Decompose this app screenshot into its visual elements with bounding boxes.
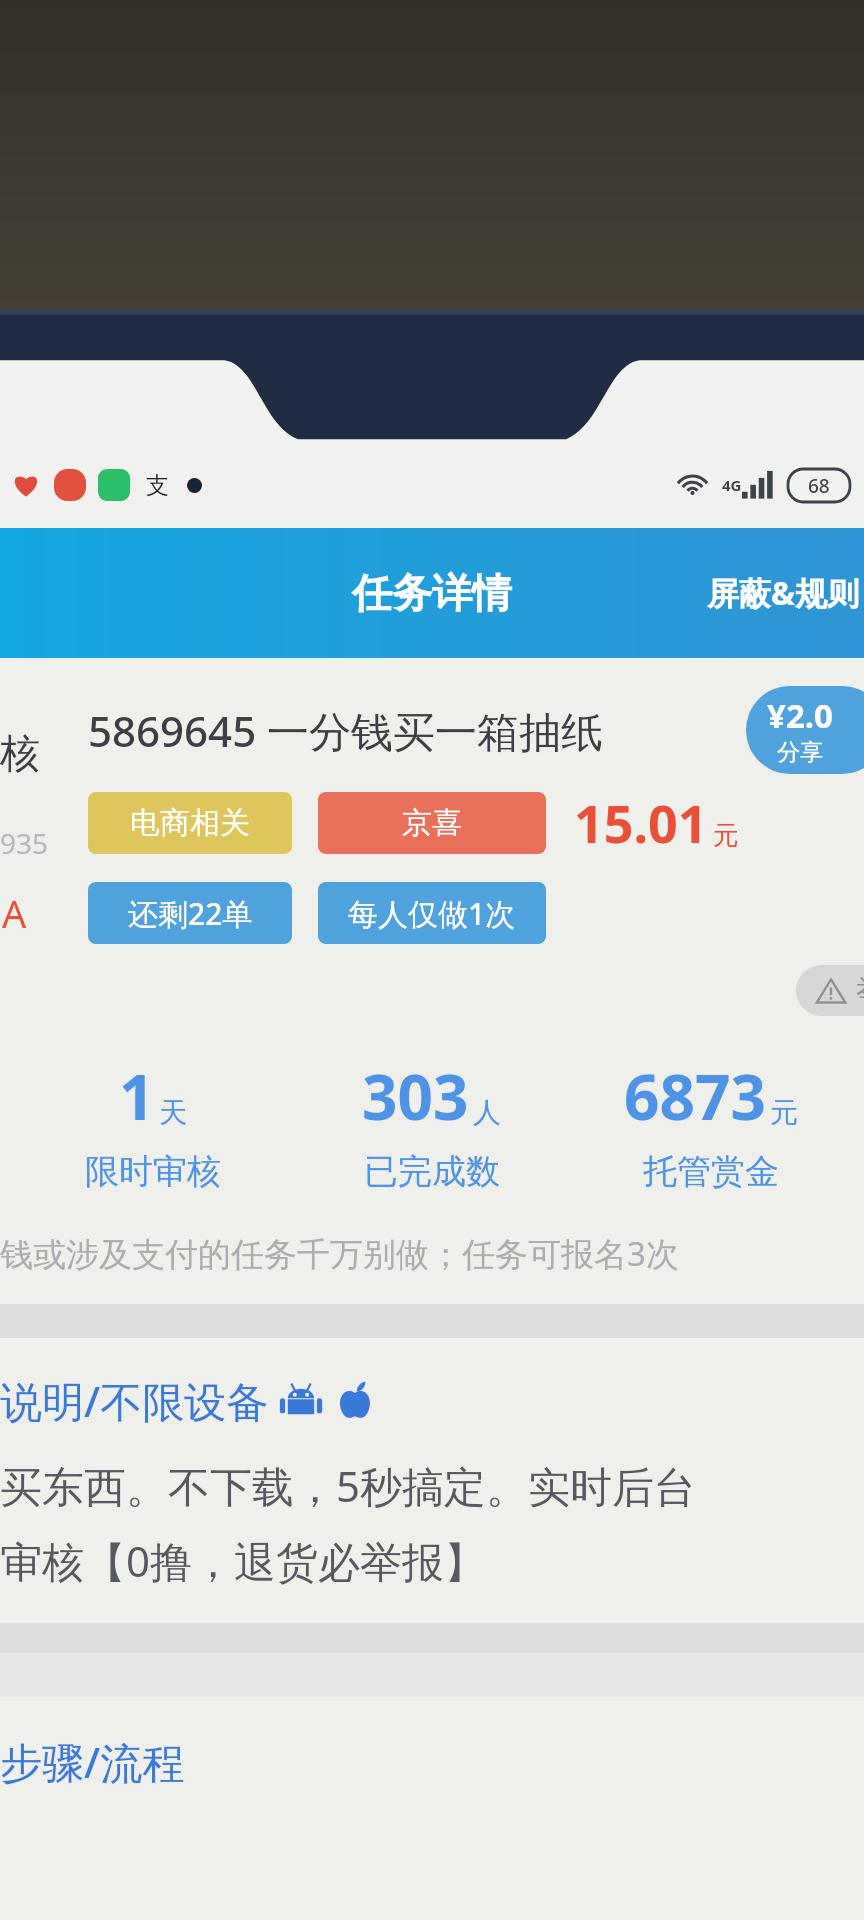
- staticText: 15.01: [574, 787, 708, 858]
- staticText: 68: [808, 473, 830, 499]
- staticText: 买东西。不下载，5秒搞定。实时后台: [0, 1457, 697, 1514]
- staticText: 京喜: [402, 804, 462, 842]
- staticText: 说明/不限设备: [0, 1372, 269, 1429]
- button[interactable]: 电商相关: [88, 792, 292, 854]
- staticText: 屏蔽&规则: [707, 571, 860, 615]
- staticText: 举: [856, 973, 864, 1008]
- button[interactable]: 5869645 一分钱买一箱抽纸: [88, 702, 604, 759]
- staticText: 分享: [777, 738, 823, 767]
- button[interactable]: 每人仅做1次: [318, 882, 546, 944]
- staticText: ¥2.0: [767, 693, 833, 738]
- button[interactable]: 京喜: [318, 792, 546, 854]
- staticText: 6873: [624, 1054, 766, 1138]
- staticText: 托管赏金: [643, 1150, 779, 1193]
- button[interactable]: 步骤/流程: [0, 1733, 185, 1790]
- button[interactable]: 屏蔽&规则: [703, 561, 864, 625]
- staticText: 每人仅做1次: [348, 893, 516, 934]
- staticText: 元: [770, 1095, 798, 1130]
- staticText: 钱或涉及支付的任务千万别做；任务可报名3次: [0, 1231, 864, 1276]
- button[interactable]: 任务详情: [346, 562, 518, 624]
- staticText: 4G: [722, 475, 742, 495]
- button[interactable]: 分享赚 2 元: [746, 686, 864, 774]
- staticText: 电商相关: [130, 804, 250, 842]
- staticText: 审核【0撸，退货必举报】: [0, 1532, 487, 1589]
- staticText: 支: [146, 471, 169, 500]
- button[interactable]: 说明/不限设备: [0, 1372, 864, 1429]
- staticText: 天: [159, 1095, 187, 1130]
- staticText: 限时审核: [85, 1150, 221, 1193]
- staticText: 1: [119, 1054, 155, 1138]
- staticText: 元: [713, 819, 739, 852]
- button[interactable]: 还剩22单: [88, 882, 292, 944]
- staticText: 核: [0, 728, 40, 778]
- staticText: 还剩22单: [128, 893, 253, 934]
- staticText: 已完成数: [364, 1150, 500, 1193]
- staticText: 人: [473, 1095, 501, 1130]
- button[interactable]: 举报: [796, 965, 864, 1016]
- staticText: 303: [362, 1054, 469, 1138]
- staticText: 935: [0, 824, 49, 862]
- staticText: A: [2, 887, 27, 939]
